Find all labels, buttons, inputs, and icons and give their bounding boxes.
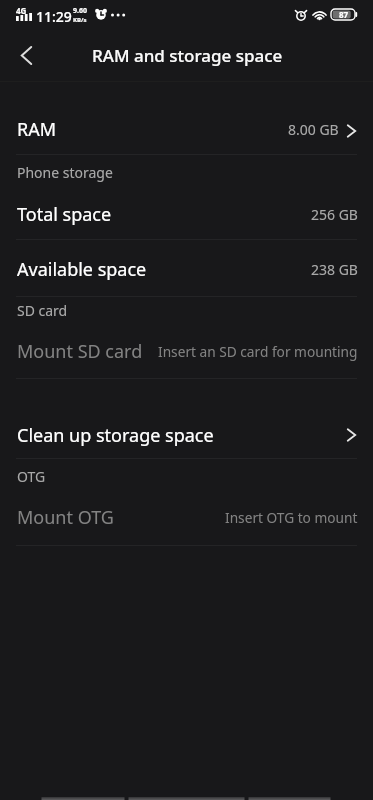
staticText: Total space — [17, 202, 112, 227]
staticText: Phone storage — [17, 163, 113, 182]
staticText: 8.00 GB — [288, 120, 339, 139]
button[interactable]: Total space — [0, 188, 373, 240]
button[interactable]: Mount SD card — [0, 324, 373, 379]
staticText: Insert OTG to mount — [225, 508, 358, 527]
staticText: 4G — [16, 5, 27, 16]
staticText: 238 GB — [311, 260, 358, 279]
staticText: Mount SD card — [17, 339, 143, 364]
button[interactable]: Mount OTG — [0, 489, 373, 545]
staticText: RAM and storage space — [92, 44, 283, 67]
staticText: 11:29 — [36, 7, 72, 26]
button[interactable]: RAM — [0, 103, 373, 155]
staticText: 87 — [339, 9, 349, 20]
staticText: RAM — [17, 117, 57, 142]
button[interactable]: Clean up storage space — [0, 410, 373, 460]
staticText: Clean up storage space — [17, 423, 214, 448]
staticText: KB/s — [73, 16, 87, 24]
staticText: 9.60 — [73, 6, 87, 16]
staticText: Available space — [17, 257, 147, 282]
button[interactable]: Available space — [0, 242, 373, 297]
staticText: Mount OTG — [17, 505, 114, 530]
button[interactable]: Back — [0, 30, 50, 81]
staticText: Insert an SD card for mounting — [158, 342, 358, 361]
staticText: SD card — [17, 301, 68, 320]
staticText: 256 GB — [311, 205, 358, 224]
staticText: OTG — [17, 467, 46, 486]
